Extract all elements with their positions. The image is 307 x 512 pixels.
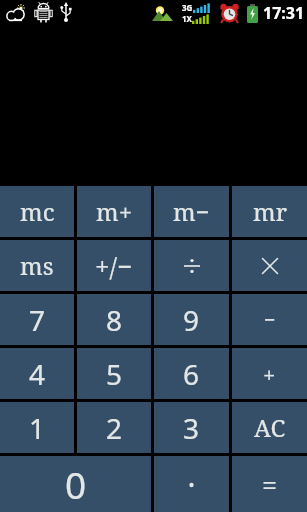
- staticText: ms: [20, 249, 54, 282]
- button[interactable]: AC: [232, 402, 307, 453]
- staticText: AC: [254, 411, 286, 444]
- button[interactable]: 5: [77, 348, 151, 399]
- button[interactable]: 9: [154, 294, 229, 345]
- button[interactable]: [232, 240, 307, 291]
- button[interactable]: 6: [154, 348, 229, 399]
- button[interactable]: ms: [0, 240, 74, 291]
- button[interactable]: 0: [0, 456, 151, 512]
- staticText: 2: [106, 409, 123, 447]
- staticText: 9: [183, 301, 200, 339]
- staticText: mr: [253, 195, 287, 228]
- staticText: +: [263, 359, 276, 389]
- button[interactable]: [154, 456, 229, 512]
- staticText: 1X: [182, 13, 192, 24]
- button[interactable]: 2: [77, 402, 151, 453]
- button[interactable]: 7: [0, 294, 74, 345]
- button[interactable]: 8: [77, 294, 151, 345]
- staticText: 6: [183, 355, 200, 393]
- button[interactable]: =: [232, 456, 307, 512]
- button[interactable]: mr: [232, 186, 307, 237]
- staticText: −: [264, 306, 276, 333]
- staticText: m−: [173, 195, 210, 228]
- button[interactable]: m+: [77, 186, 151, 237]
- staticText: 7: [29, 301, 46, 339]
- staticText: =: [262, 466, 278, 503]
- button[interactable]: −: [232, 294, 307, 345]
- button[interactable]: 1: [0, 402, 74, 453]
- staticText: 0: [65, 459, 87, 509]
- button[interactable]: +/−: [77, 240, 151, 291]
- button[interactable]: +: [232, 348, 307, 399]
- staticText: 3: [183, 409, 200, 447]
- staticText: 5: [106, 355, 123, 393]
- staticText: 3G: [182, 2, 193, 13]
- button[interactable]: 4: [0, 348, 74, 399]
- button[interactable]: mc: [0, 186, 74, 237]
- staticText: 1: [29, 409, 46, 447]
- staticText: +/−: [95, 248, 133, 283]
- staticText: 8: [106, 301, 123, 339]
- staticText: 17:31: [263, 2, 305, 24]
- button[interactable]: 3: [154, 402, 229, 453]
- staticText: m+: [96, 195, 133, 228]
- button[interactable]: [154, 240, 229, 291]
- staticText: mc: [20, 195, 55, 228]
- staticText: 4: [29, 355, 46, 393]
- button[interactable]: m−: [154, 186, 229, 237]
